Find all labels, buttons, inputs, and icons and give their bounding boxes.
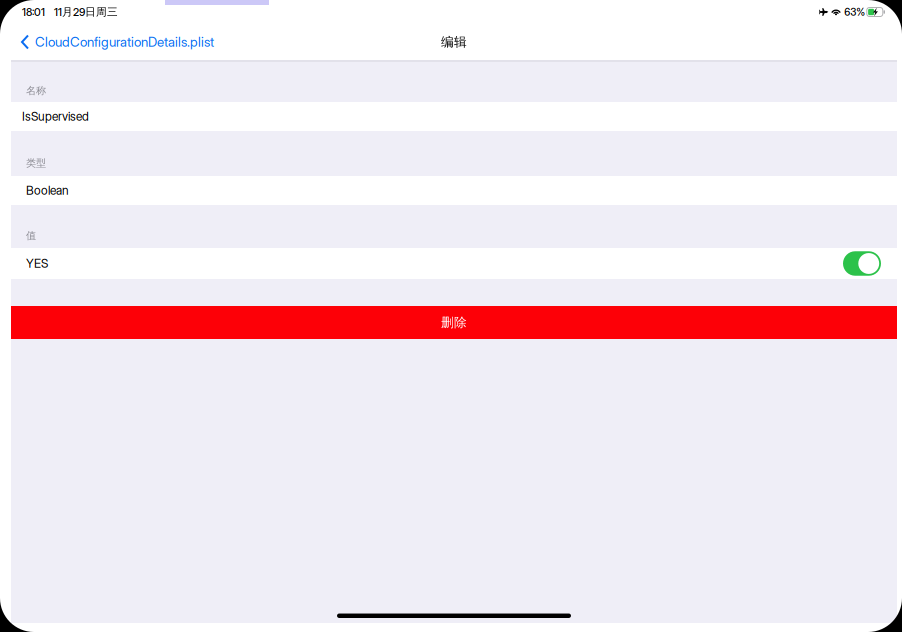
staticText: YES	[26, 256, 48, 271]
staticText: 11月29日周三	[54, 5, 118, 19]
staticText: 值	[26, 229, 36, 242]
staticText: Boolean	[26, 183, 69, 198]
button[interactable]: 删除	[11, 306, 897, 339]
staticText: 18:01	[22, 5, 45, 18]
staticText: CloudConfigurationDetails.plist	[35, 34, 214, 50]
button[interactable]: Boolean	[11, 176, 897, 205]
staticText: 编辑	[441, 34, 467, 50]
button[interactable]: IsSupervised	[11, 102, 897, 131]
staticText: 类型	[26, 157, 46, 169]
staticText: IsSupervised	[22, 109, 89, 124]
staticText: 删除	[441, 314, 467, 330]
staticText: 名称	[26, 84, 46, 97]
button[interactable]: Value on	[843, 251, 881, 276]
staticText: 63%	[844, 6, 865, 18]
button[interactable]: CloudConfigurationDetails.plist	[0, 27, 222, 57]
